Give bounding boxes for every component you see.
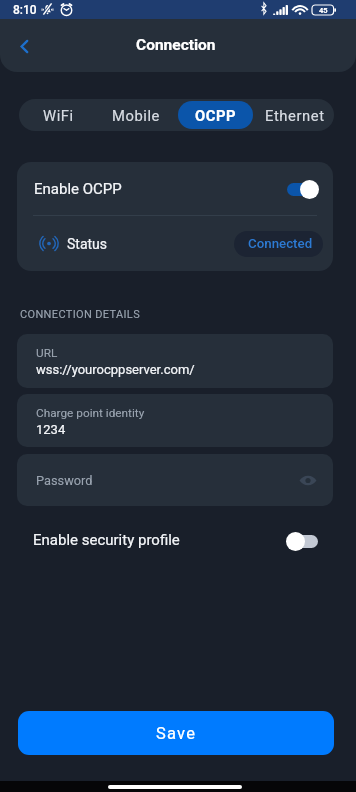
- button[interactable]: Enable OCPP: [17, 162, 333, 215]
- staticText: 1234: [36, 422, 66, 437]
- staticText: CONNECTION DETAILS: [20, 308, 141, 321]
- staticText: Password: [36, 473, 93, 488]
- button[interactable]: Enable security profile: [0, 521, 356, 561]
- staticText: Enable OCPP: [34, 180, 122, 198]
- staticText: 8:10: [13, 3, 37, 17]
- staticText: WiFi: [43, 107, 74, 124]
- staticText: Mobile: [112, 107, 161, 124]
- staticText: Status: [67, 236, 108, 252]
- button[interactable]: Connected: [234, 231, 323, 257]
- button[interactable]: Back: [8, 30, 40, 62]
- button[interactable]: URL: [17, 334, 333, 388]
- button[interactable]: Ethernet: [257, 101, 332, 129]
- staticText: 45: [319, 6, 328, 15]
- staticText: wss://yourocppserver.com/: [36, 362, 195, 377]
- button[interactable]: Charge point identity: [17, 394, 333, 447]
- button[interactable]: Status: [17, 216, 333, 271]
- button[interactable]: WiFi: [21, 101, 95, 129]
- button[interactable]: Password: [17, 454, 333, 506]
- button[interactable]: Save: [18, 711, 334, 755]
- staticText: OCPP: [195, 107, 237, 124]
- button[interactable]: OCPP: [178, 101, 253, 129]
- staticText: Connection: [136, 36, 216, 54]
- button[interactable]: Show password: [295, 467, 321, 493]
- staticText: Ethernet: [265, 107, 325, 124]
- button[interactable]: Switch on: [285, 179, 319, 199]
- staticText: Save: [156, 724, 197, 743]
- button[interactable]: Mobile: [99, 101, 174, 129]
- staticText: Enable security profile: [33, 531, 180, 549]
- button[interactable]: Switch off: [286, 531, 320, 551]
- staticText: Connected: [248, 236, 313, 252]
- staticText: URL: [36, 346, 58, 360]
- staticText: Charge point identity: [36, 406, 145, 420]
